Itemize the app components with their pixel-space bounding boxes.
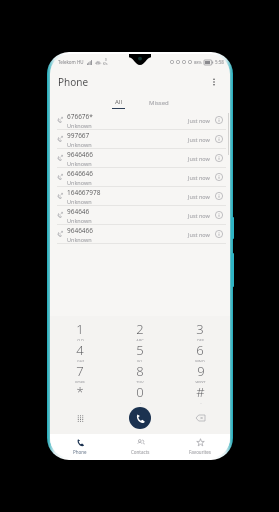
staticText: Just now — [188, 117, 210, 124]
button[interactable]: 164667978 — [50, 187, 230, 206]
staticText: Just now — [188, 212, 210, 219]
staticText: All — [115, 98, 122, 106]
staticText: GHI — [77, 359, 84, 362]
staticText: # — [196, 383, 205, 401]
button[interactable]: * — [50, 383, 110, 404]
button[interactable]: 4 — [50, 341, 110, 362]
staticText: Contacts — [131, 449, 150, 455]
staticText: Unknown — [67, 160, 92, 167]
staticText: K/s — [103, 62, 108, 66]
staticText: 4 — [76, 341, 84, 359]
staticText: 676676* — [67, 112, 93, 121]
staticText: 0 — [136, 383, 144, 401]
button[interactable]: Phone — [50, 434, 110, 458]
staticText: 1 — [76, 320, 84, 338]
staticText: 8 — [136, 362, 144, 380]
staticText: 9646466 — [67, 150, 94, 159]
button[interactable]: 964646 — [50, 206, 230, 225]
button[interactable]: Call details — [214, 210, 224, 220]
staticText: Unknown — [67, 198, 92, 205]
button[interactable]: Call details — [214, 229, 224, 239]
staticText: 0 — [105, 58, 107, 62]
staticText: Just now — [188, 136, 210, 143]
staticText: 2 — [136, 320, 144, 338]
staticText: Favourites — [189, 449, 211, 455]
staticText: Telekom HU — [58, 59, 84, 65]
button[interactable]: Contacts — [110, 434, 170, 458]
staticText: JKL — [137, 359, 143, 362]
staticText: 6 — [196, 341, 204, 359]
staticText: DEF — [197, 338, 204, 341]
staticText: Phone — [73, 449, 87, 455]
button[interactable]: Call details — [214, 172, 224, 182]
staticText: ABC — [136, 338, 144, 341]
button[interactable]: Hide keypad — [50, 404, 110, 432]
staticText: 164667978 — [67, 188, 101, 197]
button[interactable]: 6 — [170, 341, 230, 362]
button[interactable]: More options — [206, 74, 222, 90]
button[interactable]: 997667 — [50, 130, 230, 149]
button[interactable]: Favourites — [170, 434, 230, 458]
button[interactable]: 9 — [170, 362, 230, 383]
staticText: Phone — [58, 75, 89, 89]
staticText: Q,D — [77, 338, 84, 341]
staticText: Just now — [188, 231, 210, 238]
button[interactable]: Call details — [214, 191, 224, 201]
staticText: Unknown — [67, 217, 92, 224]
staticText: Unknown — [67, 122, 92, 129]
staticText: WXYZ — [195, 380, 206, 383]
staticText: 9 — [197, 362, 205, 380]
button[interactable]: Call details — [214, 153, 224, 163]
button[interactable]: 9646466 — [50, 149, 230, 168]
staticText: 964646 — [67, 207, 90, 216]
button[interactable]: 676676* — [50, 111, 230, 130]
button[interactable]: 9646466 — [50, 225, 230, 244]
button[interactable]: 1 — [50, 320, 110, 341]
button[interactable]: # — [170, 383, 230, 404]
staticText: Unknown — [67, 236, 92, 243]
staticText: MNO — [195, 359, 205, 362]
button[interactable]: 0 — [110, 383, 170, 404]
button[interactable]: All — [104, 97, 133, 110]
staticText: Just now — [188, 193, 210, 200]
staticText: 88% — [194, 60, 202, 65]
staticText: PQRS — [75, 380, 85, 383]
staticText: TUV — [136, 380, 144, 383]
staticText: + — [139, 401, 142, 404]
staticText: ; — [200, 401, 202, 404]
staticText: Just now — [188, 155, 210, 162]
staticText: 6646646 — [67, 169, 94, 178]
button[interactable]: 5 — [110, 341, 170, 362]
staticText: 7 — [76, 362, 84, 380]
staticText: Unknown — [67, 141, 92, 148]
button[interactable]: 8 — [110, 362, 170, 383]
button[interactable]: Call — [129, 407, 151, 429]
staticText: 5:58 — [215, 59, 224, 65]
staticText: 997667 — [67, 131, 90, 140]
staticText: Missed — [149, 99, 169, 107]
staticText: Unknown — [67, 179, 92, 186]
staticText: 3 — [196, 320, 204, 338]
button[interactable]: Call details — [214, 134, 224, 144]
staticText: * — [76, 383, 84, 401]
button[interactable]: 2 — [110, 320, 170, 341]
button[interactable]: Missed — [141, 98, 177, 108]
staticText: Just now — [188, 174, 210, 181]
button[interactable]: 3 — [170, 320, 230, 341]
button[interactable]: Backspace — [170, 404, 230, 432]
button[interactable]: 6646646 — [50, 168, 230, 187]
staticText: 9646466 — [67, 226, 94, 235]
button[interactable]: Call details — [214, 115, 224, 125]
staticText: 5 — [136, 341, 144, 359]
button[interactable]: 7 — [50, 362, 110, 383]
